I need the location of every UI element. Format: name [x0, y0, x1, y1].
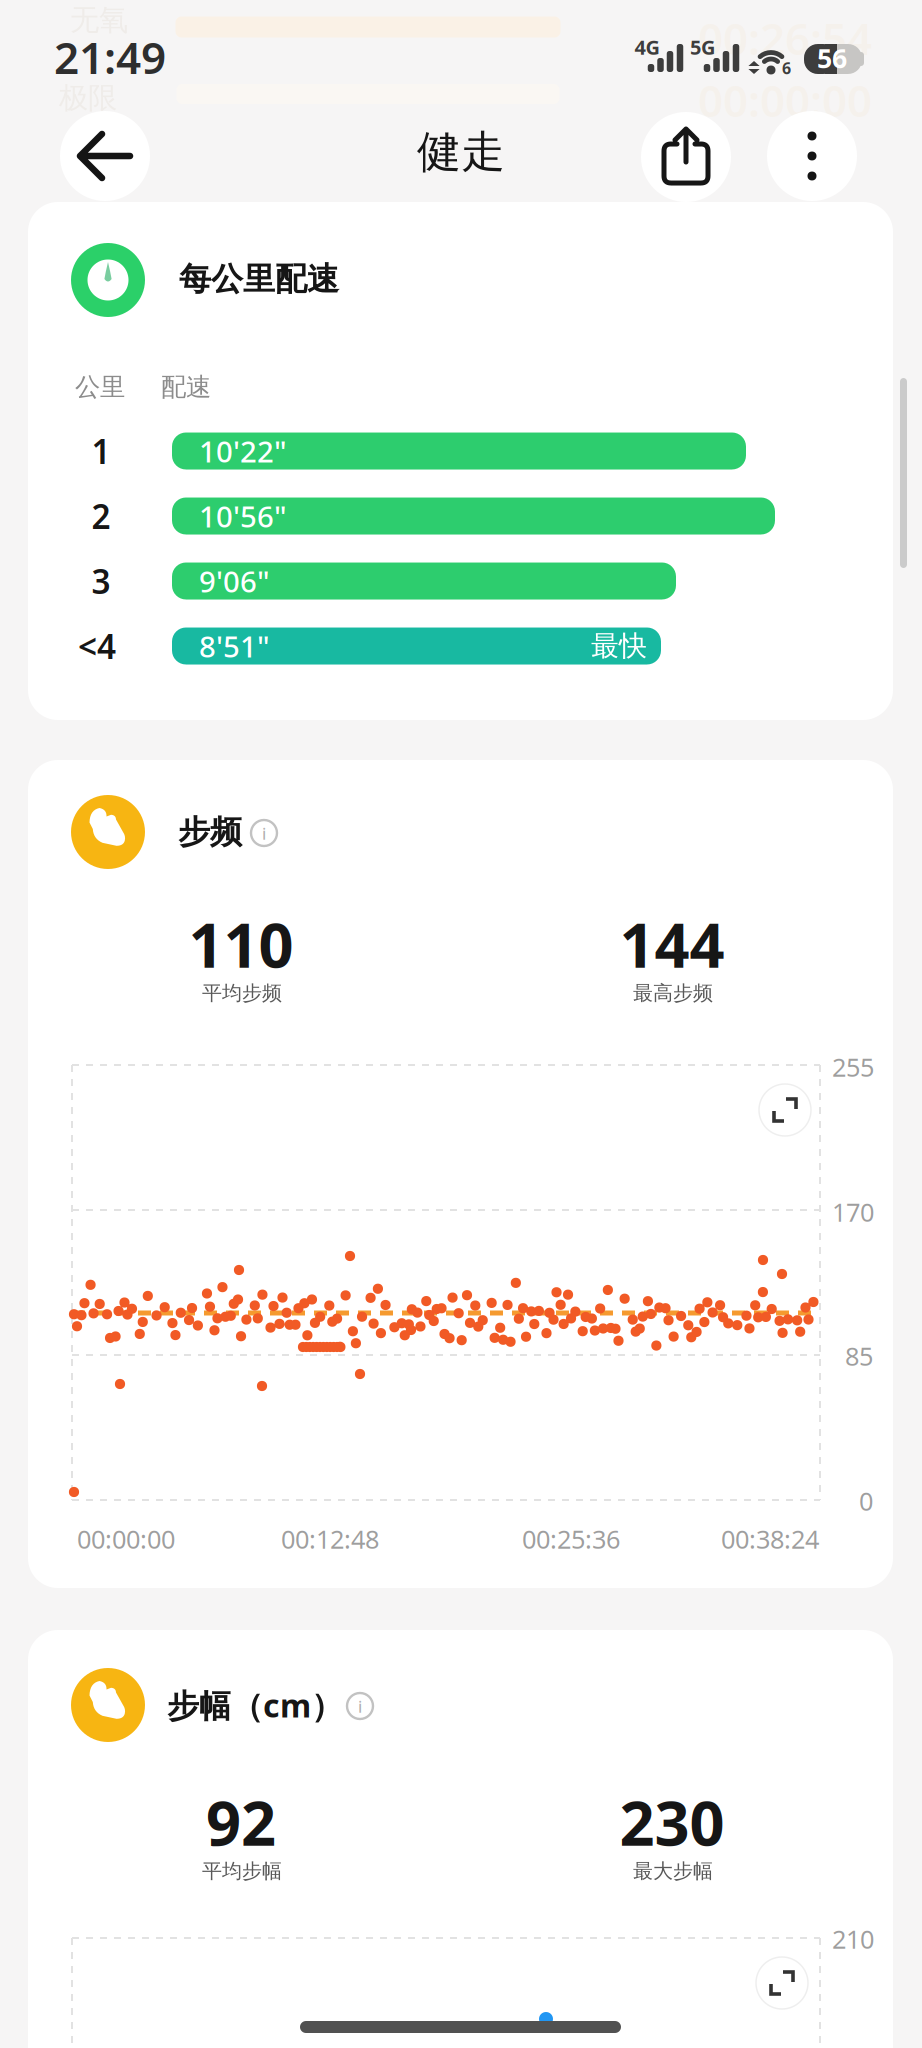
staticText: 8'51": [199, 626, 270, 665]
staticText: 00:00:00: [77, 1522, 175, 1556]
staticText: 公里: [75, 371, 125, 402]
staticText: 00:38:24: [721, 1522, 819, 1556]
button[interactable]: Expand chart: [759, 1084, 811, 1136]
staticText: 56: [817, 40, 847, 76]
staticText: 00:12:48: [281, 1522, 379, 1556]
staticText: 10'22": [199, 431, 287, 470]
staticText: 230: [619, 1781, 724, 1863]
staticText: 平均步频: [202, 981, 282, 1005]
button[interactable]: Info: [347, 1693, 373, 1719]
staticText: 00:26:54: [698, 9, 872, 67]
staticText: 144: [619, 903, 724, 985]
staticText: 健走: [417, 125, 505, 179]
staticText: i: [262, 823, 266, 844]
button[interactable]: Back: [60, 111, 150, 201]
button[interactable]: Share: [641, 112, 731, 202]
staticText: 极限: [59, 80, 117, 116]
staticText: 3: [91, 559, 110, 603]
staticText: 1: [91, 429, 110, 473]
staticText: 210: [832, 1922, 874, 1956]
staticText: 最高步频: [633, 981, 713, 1005]
staticText: 6: [782, 57, 791, 79]
staticText: 4G: [634, 34, 659, 60]
staticText: 每公里配速: [179, 259, 339, 299]
staticText: 21:49: [54, 28, 166, 86]
staticText: 170: [832, 1195, 874, 1229]
staticText: 平均步幅: [202, 1859, 282, 1883]
staticText: 2: [91, 494, 110, 538]
staticText: <4: [78, 624, 116, 668]
button[interactable]: Info: [251, 820, 277, 846]
staticText: 无氧: [70, 2, 128, 38]
staticText: 00:25:36: [522, 1522, 620, 1556]
staticText: 00:00:00: [698, 71, 872, 129]
staticText: 110: [188, 903, 293, 985]
staticText: 最快: [591, 629, 647, 663]
staticText: i: [358, 1696, 362, 1717]
staticText: 10'56": [199, 496, 287, 535]
staticText: 配速: [161, 371, 211, 402]
staticText: 0: [859, 1484, 873, 1518]
button[interactable]: Expand chart: [756, 1957, 808, 2009]
staticText: 9'06": [199, 561, 270, 600]
staticText: 92: [206, 1781, 276, 1863]
staticText: 5G: [690, 34, 715, 60]
staticText: 步频: [178, 812, 242, 852]
button[interactable]: More: [767, 111, 857, 201]
staticText: 255: [832, 1050, 874, 1084]
staticText: 85: [845, 1339, 873, 1373]
staticText: 最大步幅: [633, 1859, 713, 1883]
staticText: 步幅（cm）: [167, 1684, 343, 1726]
